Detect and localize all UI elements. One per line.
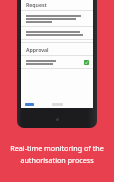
staticText: Approval	[26, 46, 49, 53]
staticText: Request Type: Smart sorting	[26, 30, 58, 33]
button[interactable]: Request Type: Smart sorting	[21, 27, 93, 39]
button[interactable]: Start date/time: 04/05/2021	[21, 11, 93, 26]
staticText: Native request	[26, 20, 43, 23]
staticText: Request ID: 18	[26, 62, 43, 65]
button[interactable]: Status: Request	[21, 56, 93, 68]
staticText: Request	[26, 1, 47, 8]
staticText: Status: Request	[26, 59, 44, 62]
staticText: Real-time monitoring of the	[10, 143, 104, 153]
button[interactable]: Approval	[21, 43, 93, 55]
staticText: Enviada/Due: 05/05/2021	[26, 17, 55, 20]
staticText: authorisation process	[20, 155, 94, 165]
staticText: Start date/time: 04/05/2021	[26, 14, 57, 17]
button[interactable]: Approved	[84, 60, 89, 65]
staticText: Responsible: 07452B0017/07	[26, 33, 59, 36]
button[interactable]: Request	[21, 0, 93, 10]
button[interactable]: Submit	[25, 103, 34, 106]
